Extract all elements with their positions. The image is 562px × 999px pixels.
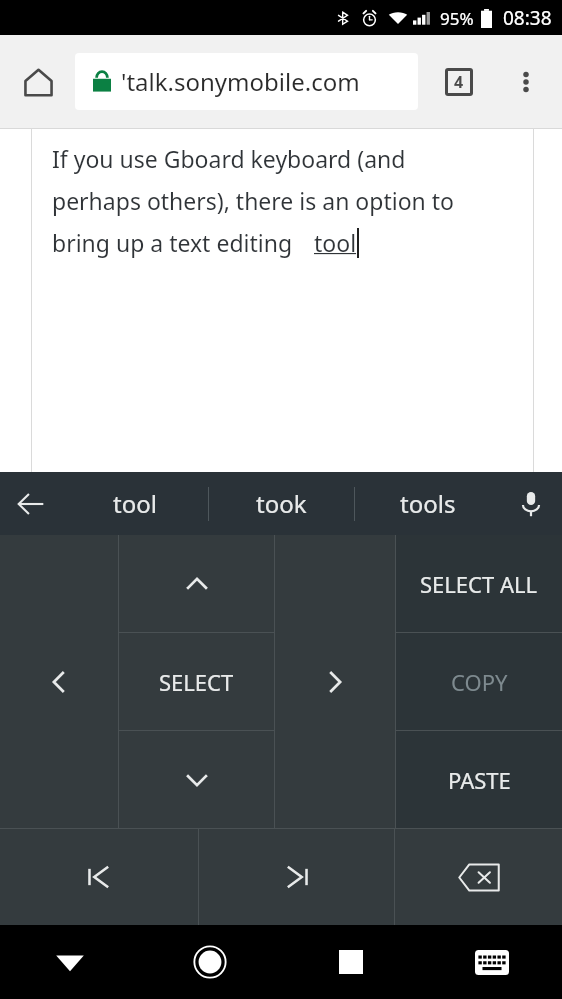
staticText: SELECT <box>159 667 234 697</box>
button[interactable]: Cursor down <box>119 731 274 828</box>
button[interactable]: Recent apps <box>280 925 421 999</box>
button[interactable]: Cursor left <box>0 535 118 828</box>
button[interactable]: COPY <box>396 633 562 730</box>
staticText: tool <box>314 227 357 258</box>
button[interactable]: Switch keyboard <box>421 925 562 999</box>
staticText: PASTE <box>448 765 511 795</box>
button[interactable]: PASTE <box>396 731 562 828</box>
button[interactable]: Move to end <box>199 829 394 925</box>
button[interactable]: Home <box>12 56 64 108</box>
button[interactable]: Back <box>0 472 62 535</box>
button[interactable]: tool <box>62 472 208 535</box>
staticText: tool <box>113 487 157 520</box>
button[interactable]: Cursor right <box>275 535 395 828</box>
button[interactable]: More options <box>502 58 550 106</box>
button[interactable]: took <box>209 472 354 535</box>
button[interactable]: SELECT ALL <box>396 535 562 632</box>
staticText: 08:38 <box>503 5 552 31</box>
button[interactable]: Tabs, 4 open <box>435 58 483 106</box>
button[interactable]: tools <box>355 472 500 535</box>
staticText: took <box>256 487 307 520</box>
staticText: If you use Gboard keyboard (and perhaps … <box>52 143 454 259</box>
staticText: 'talk.sonymobile.com <box>121 65 360 98</box>
button[interactable]: Move to start <box>0 829 198 925</box>
button[interactable]: Cursor up <box>119 535 274 632</box>
button[interactable]: SELECT <box>119 633 274 730</box>
staticText: 4 <box>454 71 464 93</box>
button[interactable]: 'talk.sonymobile.com <box>75 53 418 110</box>
button[interactable]: Home <box>140 925 280 999</box>
staticText: tools <box>400 487 456 520</box>
staticText: COPY <box>451 667 508 697</box>
button[interactable]: Hide keyboard <box>0 925 140 999</box>
staticText: SELECT ALL <box>420 569 538 599</box>
staticText: 95% <box>440 7 474 30</box>
button[interactable]: Voice input <box>500 472 562 535</box>
button[interactable]: Backspace <box>395 829 562 925</box>
